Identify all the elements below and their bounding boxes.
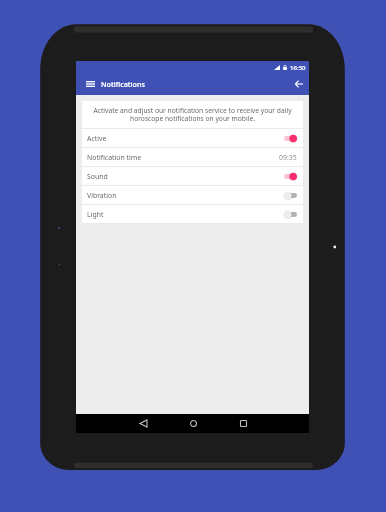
staticText: 16:50 — [290, 63, 306, 71]
button[interactable]: Back — [133, 414, 153, 433]
staticText: Light — [87, 210, 104, 219]
button[interactable]: Notification time — [82, 147, 303, 166]
button[interactable]: Active — [82, 128, 303, 147]
staticText: Activate and adjust our notification ser… — [92, 106, 293, 123]
button[interactable]: Vibration — [82, 185, 303, 204]
staticText: 09:35 — [279, 153, 297, 162]
button[interactable]: Light — [82, 204, 303, 223]
button[interactable]: Recent apps — [233, 414, 253, 433]
staticText: Sound — [87, 172, 108, 181]
button[interactable]: Home — [183, 414, 203, 433]
staticText: Active — [87, 134, 107, 143]
button[interactable]: Open navigation menu — [82, 75, 98, 93]
button[interactable]: Back — [291, 75, 307, 93]
staticText: Notification time — [87, 153, 142, 162]
staticText: Vibration — [87, 191, 117, 200]
staticText: Notifications — [101, 79, 145, 89]
button[interactable]: Sound — [82, 166, 303, 185]
